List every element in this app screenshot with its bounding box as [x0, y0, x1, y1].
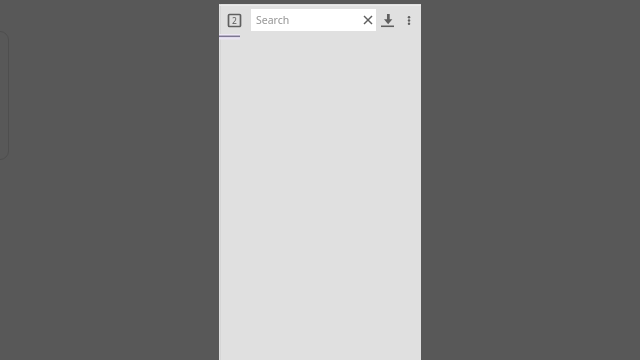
button[interactable]: Search: [251, 9, 376, 31]
staticText: Search: [256, 13, 290, 27]
button[interactable]: Clear search: [357, 9, 378, 31]
button[interactable]: Downloads: [376, 9, 399, 31]
button[interactable]: Page loading: [219, 34, 240, 39]
button[interactable]: Switch tabs: [221, 7, 248, 34]
button[interactable]: More options: [399, 9, 419, 31]
staticText: 2: [232, 15, 237, 27]
